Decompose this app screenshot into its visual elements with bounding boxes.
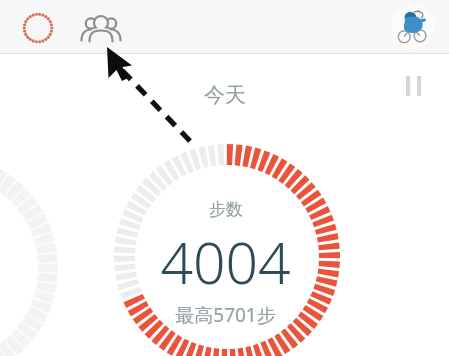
staticText: 4004 [160,223,291,301]
staticText: 今天 [204,82,246,108]
button[interactable]: Activity ring [21,11,55,45]
button[interactable]: Profile [391,5,435,49]
staticText: 最高5701步 [175,302,276,328]
button[interactable]: Friends [80,11,122,43]
button[interactable]: Pause [404,74,428,98]
staticText: 步数 [209,199,243,220]
